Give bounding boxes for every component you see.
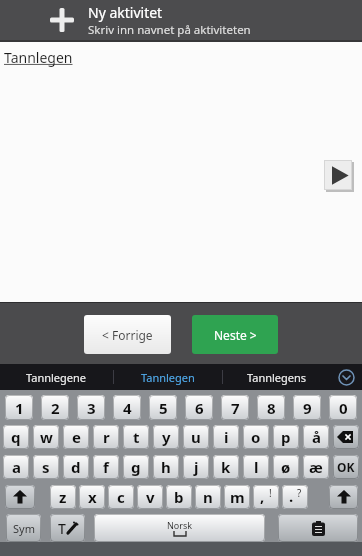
- button[interactable]: 8: [257, 395, 285, 420]
- staticText: 4: [123, 398, 132, 418]
- button[interactable]: b: [166, 485, 192, 509]
- button[interactable]: r: [93, 425, 119, 449]
- staticText: 9: [303, 398, 312, 418]
- button[interactable]: 9: [293, 395, 321, 420]
- staticText: y: [162, 427, 171, 447]
- button[interactable]: Tannlegen: [114, 364, 222, 390]
- button[interactable]: å: [303, 425, 329, 449]
- button[interactable]: h: [153, 455, 179, 479]
- button[interactable]: .: [282, 485, 308, 509]
- staticText: a: [12, 457, 21, 477]
- staticText: r: [103, 427, 110, 447]
- staticText: ø: [281, 457, 291, 477]
- staticText: Skriv inn navnet på aktiviteten: [88, 22, 251, 38]
- staticText: ?: [297, 486, 302, 500]
- button[interactable]: ,: [253, 485, 279, 509]
- staticText: n: [203, 487, 213, 507]
- staticText: o: [251, 427, 261, 447]
- staticText: < Forrige: [102, 327, 153, 343]
- button[interactable]: l: [243, 455, 269, 479]
- button[interactable]: o: [243, 425, 269, 449]
- button[interactable]: 2: [41, 395, 69, 420]
- button[interactable]: j: [183, 455, 209, 479]
- button[interactable]: w: [33, 425, 59, 449]
- button[interactable]: k: [213, 455, 239, 479]
- staticText: 1: [15, 398, 24, 418]
- staticText: g: [131, 457, 141, 477]
- button[interactable]: f: [93, 455, 119, 479]
- button[interactable]: 0: [329, 395, 357, 420]
- button[interactable]: Norsk: [94, 514, 265, 542]
- staticText: å: [312, 427, 321, 447]
- button[interactable]: p: [273, 425, 299, 449]
- staticText: h: [161, 457, 171, 477]
- button[interactable]: 4: [113, 395, 141, 420]
- staticText: 2: [51, 398, 60, 418]
- staticText: z: [59, 487, 67, 507]
- staticText: e: [72, 427, 81, 447]
- staticText: k: [221, 457, 231, 477]
- staticText: c: [117, 487, 125, 507]
- button[interactable]: a: [3, 455, 29, 479]
- button[interactable]: u: [183, 425, 209, 449]
- button[interactable]: [278, 514, 358, 542]
- button[interactable]: d: [63, 455, 89, 479]
- staticText: 3: [87, 398, 96, 418]
- button[interactable]: q: [3, 425, 29, 449]
- button[interactable]: [331, 364, 362, 390]
- button[interactable]: æ: [303, 455, 329, 479]
- button[interactable]: ø: [273, 455, 299, 479]
- button[interactable]: x: [79, 485, 105, 509]
- button[interactable]: y: [153, 425, 179, 449]
- staticText: l: [254, 457, 259, 477]
- button[interactable]: < Forrige: [84, 315, 171, 354]
- button[interactable]: s: [33, 455, 59, 479]
- staticText: Tannlegen: [4, 48, 73, 67]
- staticText: j: [194, 457, 199, 477]
- staticText: u: [191, 427, 201, 447]
- button[interactable]: 6: [185, 395, 213, 420]
- button[interactable]: [333, 425, 359, 449]
- staticText: æ: [309, 457, 323, 477]
- staticText: 7: [231, 398, 240, 418]
- button[interactable]: n: [195, 485, 221, 509]
- staticText: 5: [159, 398, 168, 418]
- staticText: b: [174, 487, 184, 507]
- staticText: d: [71, 457, 81, 477]
- staticText: i: [224, 427, 229, 447]
- button[interactable]: c: [108, 485, 134, 509]
- button[interactable]: z: [50, 485, 76, 509]
- staticText: Neste >: [214, 327, 257, 343]
- staticText: T: [58, 519, 66, 538]
- button[interactable]: [329, 485, 358, 509]
- button[interactable]: 1: [5, 395, 33, 420]
- staticText: Norsk: [167, 519, 193, 531]
- button[interactable]: 3: [77, 395, 105, 420]
- button[interactable]: 7: [221, 395, 249, 420]
- button[interactable]: OK: [333, 455, 359, 479]
- staticText: v: [146, 487, 155, 507]
- button[interactable]: Tannlegene: [0, 364, 113, 390]
- button[interactable]: e: [63, 425, 89, 449]
- button[interactable]: Sym: [6, 514, 41, 542]
- staticText: Tannlegene: [26, 370, 87, 385]
- staticText: 8: [267, 398, 276, 418]
- button[interactable]: g: [123, 455, 149, 479]
- staticText: .: [289, 486, 294, 506]
- staticText: Tannlegens: [247, 370, 307, 385]
- button[interactable]: t: [123, 425, 149, 449]
- button[interactable]: m: [224, 485, 250, 509]
- button[interactable]: i: [213, 425, 239, 449]
- button[interactable]: v: [137, 485, 163, 509]
- button[interactable]: Neste >: [192, 315, 278, 354]
- button[interactable]: [324, 160, 352, 190]
- staticText: Tannlegen: [141, 370, 195, 385]
- staticText: f: [103, 457, 109, 477]
- button[interactable]: [5, 485, 35, 509]
- button[interactable]: Tannlegens: [223, 364, 331, 390]
- button[interactable]: 5: [149, 395, 177, 420]
- button[interactable]: T: [50, 514, 85, 542]
- staticText: Sym: [13, 521, 35, 536]
- staticText: !: [269, 486, 272, 500]
- staticText: t: [133, 427, 140, 447]
